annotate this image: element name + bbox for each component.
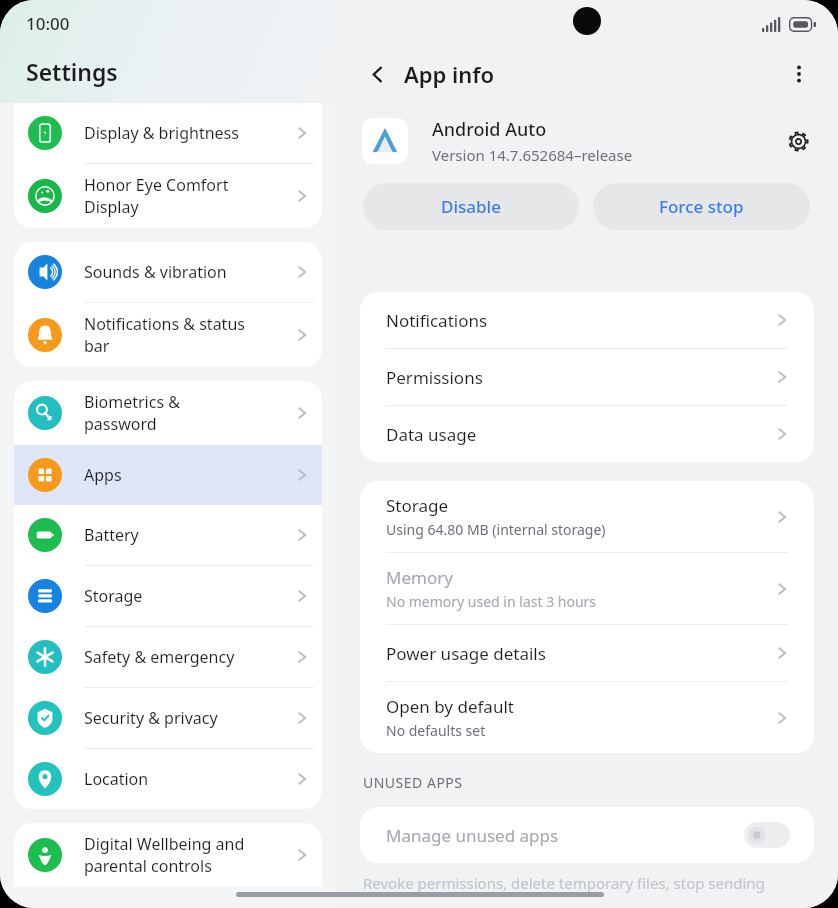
staticText: Android Auto: [432, 117, 547, 142]
button[interactable]: Location: [14, 749, 322, 809]
button[interactable]: Power usage details: [360, 625, 814, 681]
staticText: Disable: [441, 195, 501, 218]
staticText: Power usage details: [386, 642, 546, 665]
button[interactable]: Data usage: [360, 406, 814, 462]
button[interactable]: Disable: [363, 183, 579, 230]
staticText: Notifications & status bar: [84, 313, 294, 357]
button[interactable]: Security & privacy: [14, 688, 322, 748]
button[interactable]: Notifications: [360, 292, 814, 348]
button[interactable]: Apps: [14, 445, 322, 505]
staticText: Security & privacy: [84, 707, 294, 729]
button[interactable]: Storage: [360, 481, 814, 552]
staticText: Using 64.80 MB (internal storage): [386, 520, 606, 539]
staticText: Revoke permissions, delete temporary fil…: [363, 873, 765, 893]
button[interactable]: Memory: [360, 553, 814, 624]
button[interactable]: Back: [362, 59, 392, 89]
staticText: UNUSED APPS: [363, 773, 463, 792]
button[interactable]: Storage: [14, 566, 322, 626]
button[interactable]: Display & brightness: [14, 103, 322, 163]
staticText: Notifications: [386, 309, 488, 332]
staticText: Display & brightness: [84, 122, 294, 144]
staticText: Open by default: [386, 695, 514, 718]
button[interactable]: Notifications & status bar: [14, 303, 322, 367]
button[interactable]: Permissions: [360, 349, 814, 405]
button[interactable]: Digital Wellbeing and parental controls: [14, 823, 322, 887]
staticText: 10:00: [26, 12, 70, 35]
staticText: Honor Eye Comfort Display: [84, 174, 294, 218]
staticText: Memory: [386, 566, 453, 589]
button[interactable]: Biometrics & password: [14, 381, 322, 445]
staticText: Safety & emergency: [84, 646, 294, 668]
staticText: Version 14.7.652684–release: [432, 145, 633, 165]
staticText: Location: [84, 768, 294, 790]
staticText: Digital Wellbeing and parental controls: [84, 833, 294, 877]
staticText: Storage: [386, 494, 449, 517]
staticText: Force stop: [659, 195, 744, 218]
button[interactable]: App settings: [780, 123, 816, 159]
button[interactable]: Safety & emergency: [14, 627, 322, 687]
staticText: Apps: [84, 464, 294, 486]
button[interactable]: More options: [782, 57, 816, 91]
staticText: Manage unused apps: [386, 824, 744, 847]
staticText: Sounds & vibration: [84, 261, 294, 283]
staticText: Biometrics & password: [84, 391, 294, 435]
staticText: Storage: [84, 585, 294, 607]
button[interactable]: Manage unused apps: [360, 807, 814, 863]
staticText: Data usage: [386, 423, 477, 446]
staticText: Battery: [84, 524, 294, 546]
staticText: No defaults set: [386, 721, 486, 740]
button[interactable]: Battery: [14, 505, 322, 565]
button[interactable]: Force stop: [593, 183, 810, 230]
button[interactable]: Open by default: [360, 682, 814, 753]
staticText: No memory used in last 3 hours: [386, 592, 597, 611]
staticText: Permissions: [386, 366, 483, 389]
staticText: Settings: [26, 56, 118, 87]
button[interactable]: Honor Eye Comfort Display: [14, 164, 322, 228]
staticText: App info: [404, 59, 782, 89]
button[interactable]: Sounds & vibration: [14, 242, 322, 302]
